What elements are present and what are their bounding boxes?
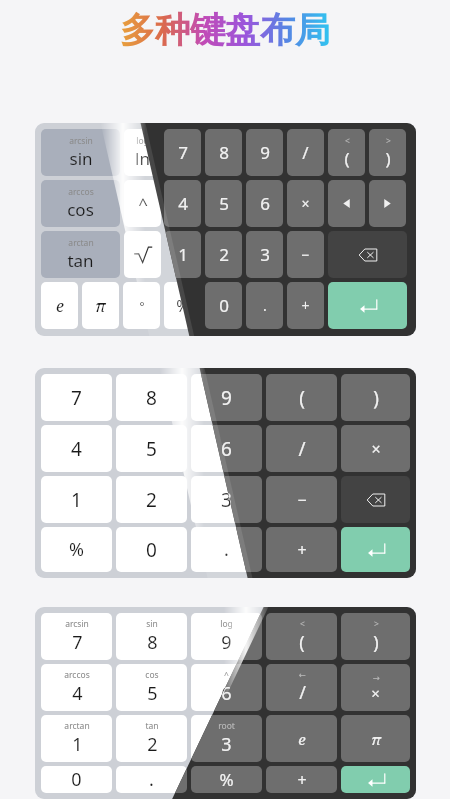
button[interactable]: 7 (164, 129, 201, 176)
button[interactable]: < (266, 613, 337, 660)
button[interactable]: . (116, 766, 187, 793)
button[interactable]: ( (266, 374, 337, 421)
button[interactable]: + (266, 527, 337, 572)
button[interactable]: ^ (124, 180, 161, 227)
button[interactable]: + (266, 766, 337, 793)
button[interactable]: arccos (41, 664, 112, 711)
button[interactable]: > (369, 129, 406, 176)
button[interactable]: 5 (116, 425, 187, 472)
button[interactable]: log (124, 129, 161, 176)
button[interactable]: − (266, 476, 337, 523)
button[interactable]: . (191, 527, 262, 572)
button[interactable]: 3 (246, 231, 283, 278)
button[interactable]: tan (116, 715, 187, 762)
button[interactable]: π (341, 715, 410, 762)
button[interactable]: Enter (341, 527, 410, 572)
button[interactable]: Backspace (341, 476, 410, 523)
button[interactable]: × (341, 425, 410, 472)
button[interactable]: Enter (328, 282, 407, 329)
button[interactable]: cos (116, 664, 187, 711)
button[interactable]: × (341, 425, 410, 472)
button[interactable]: → (341, 664, 410, 711)
button[interactable]: 8 (116, 374, 187, 421)
button[interactable]: arcsin (41, 129, 120, 176)
button[interactable]: % (41, 527, 112, 572)
button[interactable]: → (341, 664, 410, 711)
button[interactable]: 9 (191, 374, 262, 421)
button[interactable]: 3 (191, 476, 262, 523)
button[interactable]: − (266, 476, 337, 523)
button[interactable]: − (287, 231, 324, 278)
button[interactable]: cos (116, 664, 187, 711)
button[interactable]: + (266, 527, 337, 572)
button[interactable]: 5 (205, 180, 242, 227)
button[interactable]: < (328, 129, 365, 176)
button[interactable]: 1 (41, 476, 112, 523)
button[interactable]: 1 (41, 476, 112, 523)
button[interactable]: e (266, 715, 337, 762)
button[interactable]: + (287, 282, 324, 329)
button[interactable]: log (191, 613, 262, 660)
button[interactable]: 8 (205, 129, 242, 176)
button[interactable]: Backspace (341, 476, 410, 523)
button[interactable]: arcsin (41, 613, 112, 660)
button[interactable]: 9 (191, 374, 262, 421)
button[interactable]: + (266, 766, 337, 793)
button[interactable]: % (164, 282, 201, 329)
button[interactable]: Backspace (328, 231, 407, 278)
button[interactable]: ^ (191, 664, 262, 711)
button[interactable]: arctan (41, 715, 112, 762)
button[interactable]: sin (116, 613, 187, 660)
button[interactable]: % (191, 766, 262, 793)
button[interactable]: ← (266, 664, 337, 711)
button[interactable]: 5 (116, 425, 187, 472)
button[interactable]: 0 (116, 527, 187, 572)
button[interactable]: 7 (41, 374, 112, 421)
button[interactable]: arccos (41, 664, 112, 711)
button[interactable]: Cursor right (369, 180, 406, 227)
button[interactable]: 0 (205, 282, 242, 329)
button[interactable]: e (266, 715, 337, 762)
button[interactable]: ) (341, 374, 410, 421)
button[interactable]: 8 (116, 374, 187, 421)
button[interactable]: Cursor left (328, 180, 365, 227)
button[interactable]: 2 (116, 476, 187, 523)
button[interactable]: 3 (191, 476, 262, 523)
button[interactable]: Enter (341, 527, 410, 572)
button[interactable]: % (191, 766, 262, 793)
button[interactable]: × (287, 180, 324, 227)
button[interactable]: sin (116, 613, 187, 660)
button[interactable]: π (82, 282, 119, 329)
button[interactable]: Enter (341, 766, 410, 793)
button[interactable]: 2 (116, 476, 187, 523)
button[interactable]: ) (341, 374, 410, 421)
button[interactable]: 0 (41, 766, 112, 793)
button[interactable]: log (191, 613, 262, 660)
button[interactable]: 4 (164, 180, 201, 227)
button[interactable]: > (341, 613, 410, 660)
button[interactable]: 6 (191, 425, 262, 472)
button[interactable]: ← (266, 664, 337, 711)
button[interactable]: 9 (246, 129, 283, 176)
button[interactable]: ( (266, 374, 337, 421)
button[interactable]: root (191, 715, 262, 762)
button[interactable]: arctan (41, 231, 120, 278)
button[interactable]: ^ (191, 664, 262, 711)
button[interactable]: 1 (164, 231, 201, 278)
button[interactable]: / (266, 425, 337, 472)
button[interactable]: e (41, 282, 78, 329)
button[interactable]: . (116, 766, 187, 793)
button[interactable]: 4 (41, 425, 112, 472)
button[interactable]: 7 (41, 374, 112, 421)
button[interactable]: 0 (41, 766, 112, 793)
button[interactable]: / (266, 425, 337, 472)
button[interactable]: . (191, 527, 262, 572)
button[interactable]: arctan (41, 715, 112, 762)
button[interactable]: 0 (116, 527, 187, 572)
button[interactable]: ° (123, 282, 160, 329)
button[interactable]: root (191, 715, 262, 762)
button[interactable]: 2 (205, 231, 242, 278)
button[interactable]: 4 (41, 425, 112, 472)
button[interactable]: 6 (191, 425, 262, 472)
button[interactable]: arcsin (41, 613, 112, 660)
